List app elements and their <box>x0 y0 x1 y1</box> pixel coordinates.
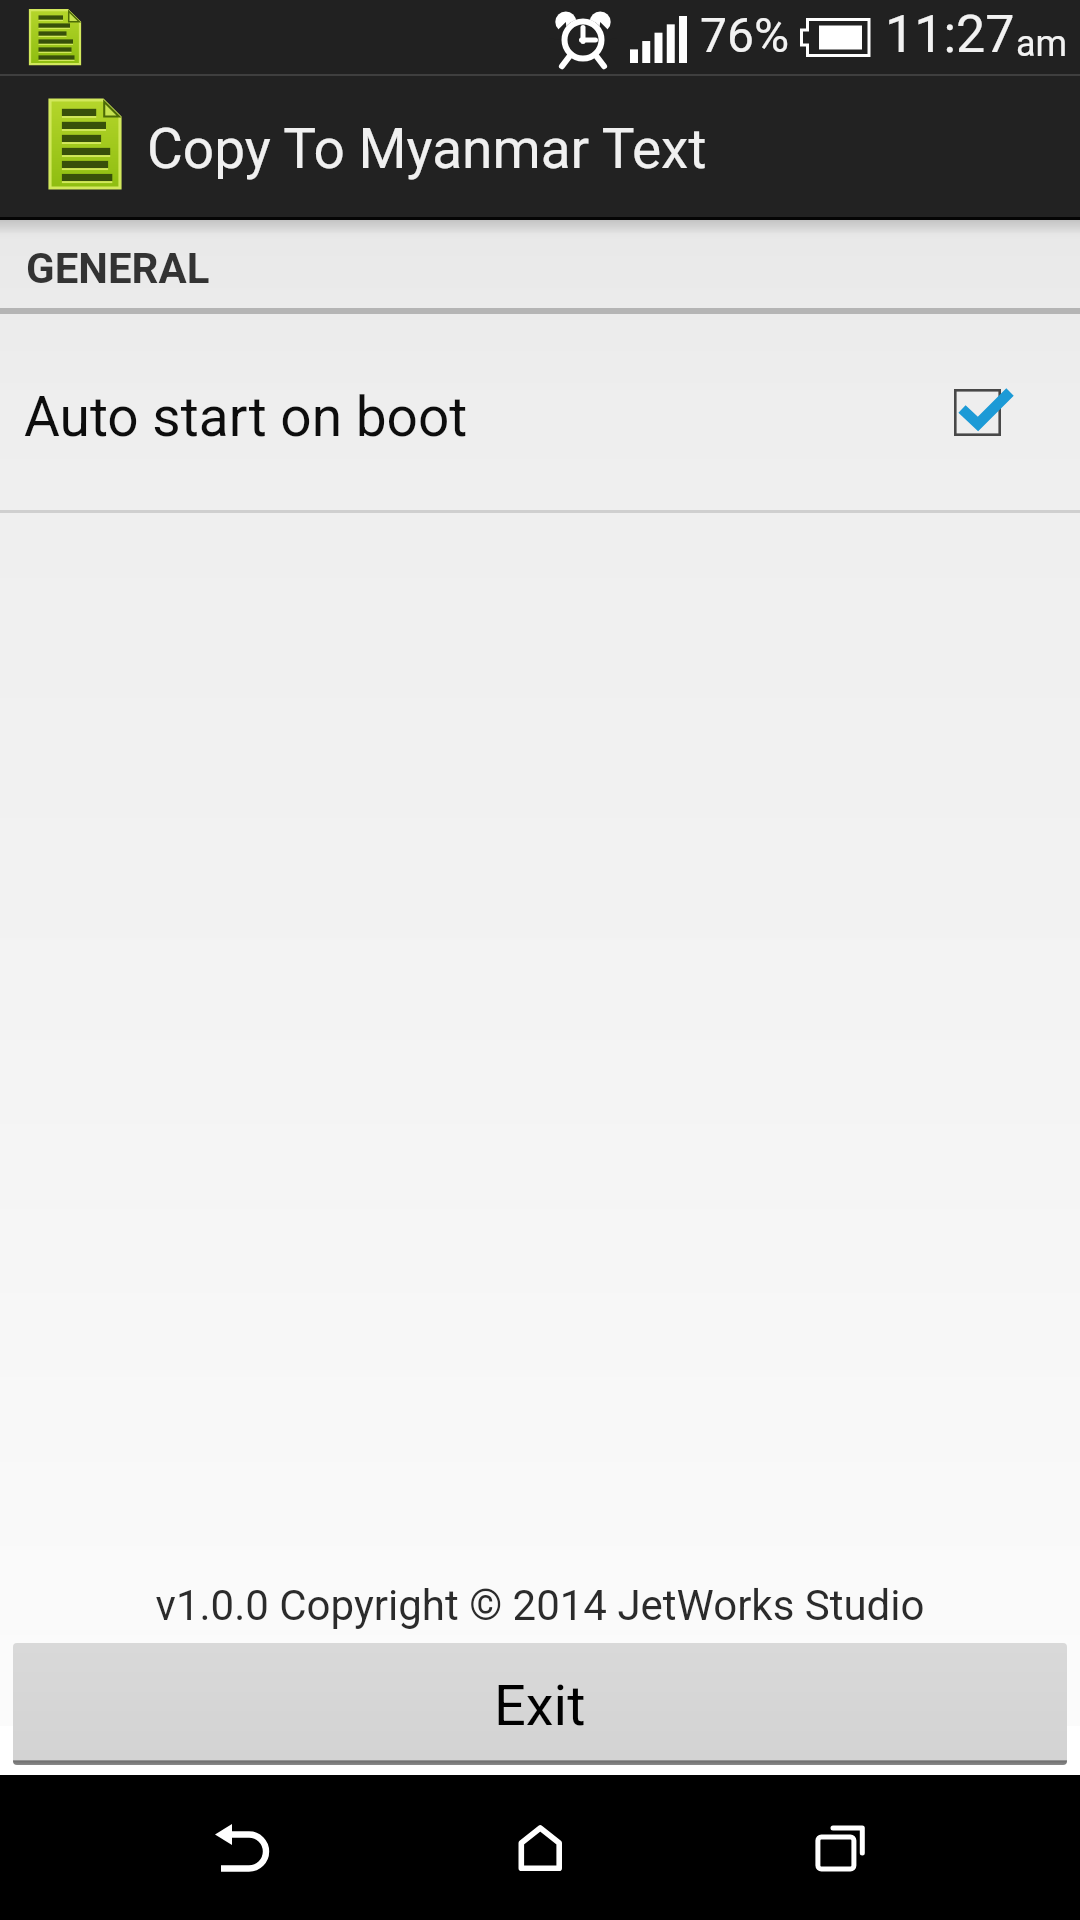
staticText: Copy To Myanmar Text <box>147 117 707 181</box>
staticText: v1.0.0 Copyright © 2014 JetWorks Studio <box>0 1581 1080 1630</box>
staticText: GENERAL <box>26 244 210 293</box>
staticText: 11:27 <box>885 4 1015 65</box>
staticText: 76% <box>700 7 790 63</box>
staticText: Exit <box>494 1673 586 1739</box>
button[interactable]: Back <box>170 1775 310 1920</box>
button[interactable]: Exit <box>13 1643 1067 1765</box>
staticText: am <box>1016 23 1068 65</box>
button[interactable]: Home <box>470 1775 610 1920</box>
staticText: Auto start on boot <box>24 385 468 449</box>
button[interactable]: Recent apps <box>770 1775 910 1920</box>
button[interactable]: Auto start on boot <box>0 315 1080 510</box>
